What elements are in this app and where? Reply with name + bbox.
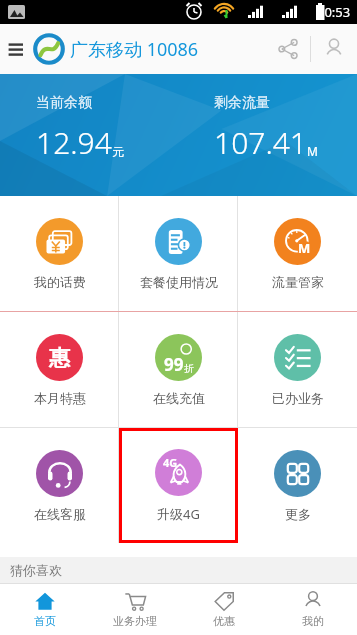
- staticText: 更多: [285, 506, 311, 522]
- button[interactable]: 业务办理: [90, 583, 179, 635]
- button[interactable]: 在线客服: [0, 428, 119, 543]
- staticText: 升级4G: [157, 505, 200, 523]
- staticText: 本月特惠: [34, 390, 86, 406]
- staticText: 元: [112, 144, 124, 159]
- button[interactable]: Profile: [311, 24, 357, 74]
- staticText: 优惠: [213, 614, 235, 628]
- staticText: 20:53: [317, 3, 351, 21]
- staticText: 已办业务: [272, 390, 324, 406]
- staticText: 广东移动 10086: [70, 37, 199, 62]
- staticText: 流量管家: [272, 274, 324, 290]
- staticText: 我的话费: [34, 274, 86, 290]
- button[interactable]: 惠: [0, 312, 119, 427]
- staticText: 套餐使用情况: [140, 274, 218, 290]
- button[interactable]: 我的话费: [0, 196, 119, 311]
- button[interactable]: Share: [266, 24, 310, 74]
- staticText: 惠: [49, 345, 70, 371]
- staticText: 业务办理: [113, 614, 157, 628]
- staticText: 折: [184, 362, 194, 375]
- staticText: 在线充值: [153, 390, 205, 406]
- button[interactable]: 套餐使用情况: [119, 196, 238, 311]
- button[interactable]: 已办业务: [238, 312, 357, 427]
- staticText: M: [307, 143, 318, 159]
- button[interactable]: 优惠: [179, 583, 268, 635]
- staticText: 当前余额: [36, 94, 92, 112]
- staticText: 107.41: [214, 122, 307, 163]
- staticText: 99: [164, 353, 184, 376]
- staticText: 4G: [163, 455, 178, 470]
- staticText: 12.94: [36, 122, 112, 163]
- button[interactable]: 我的: [268, 583, 357, 635]
- staticText: 猜你喜欢: [10, 562, 62, 578]
- staticText: M: [298, 239, 311, 257]
- button[interactable]: 99: [119, 312, 238, 427]
- button[interactable]: 首页: [0, 583, 90, 635]
- staticText: 首页: [34, 614, 56, 628]
- button[interactable]: 4G: [119, 428, 238, 543]
- button[interactable]: 更多: [238, 428, 357, 543]
- staticText: 剩余流量: [214, 94, 270, 112]
- button[interactable]: M: [238, 196, 357, 311]
- button[interactable]: Menu: [0, 24, 34, 74]
- staticText: 我的: [302, 614, 324, 628]
- staticText: 在线客服: [34, 506, 86, 522]
